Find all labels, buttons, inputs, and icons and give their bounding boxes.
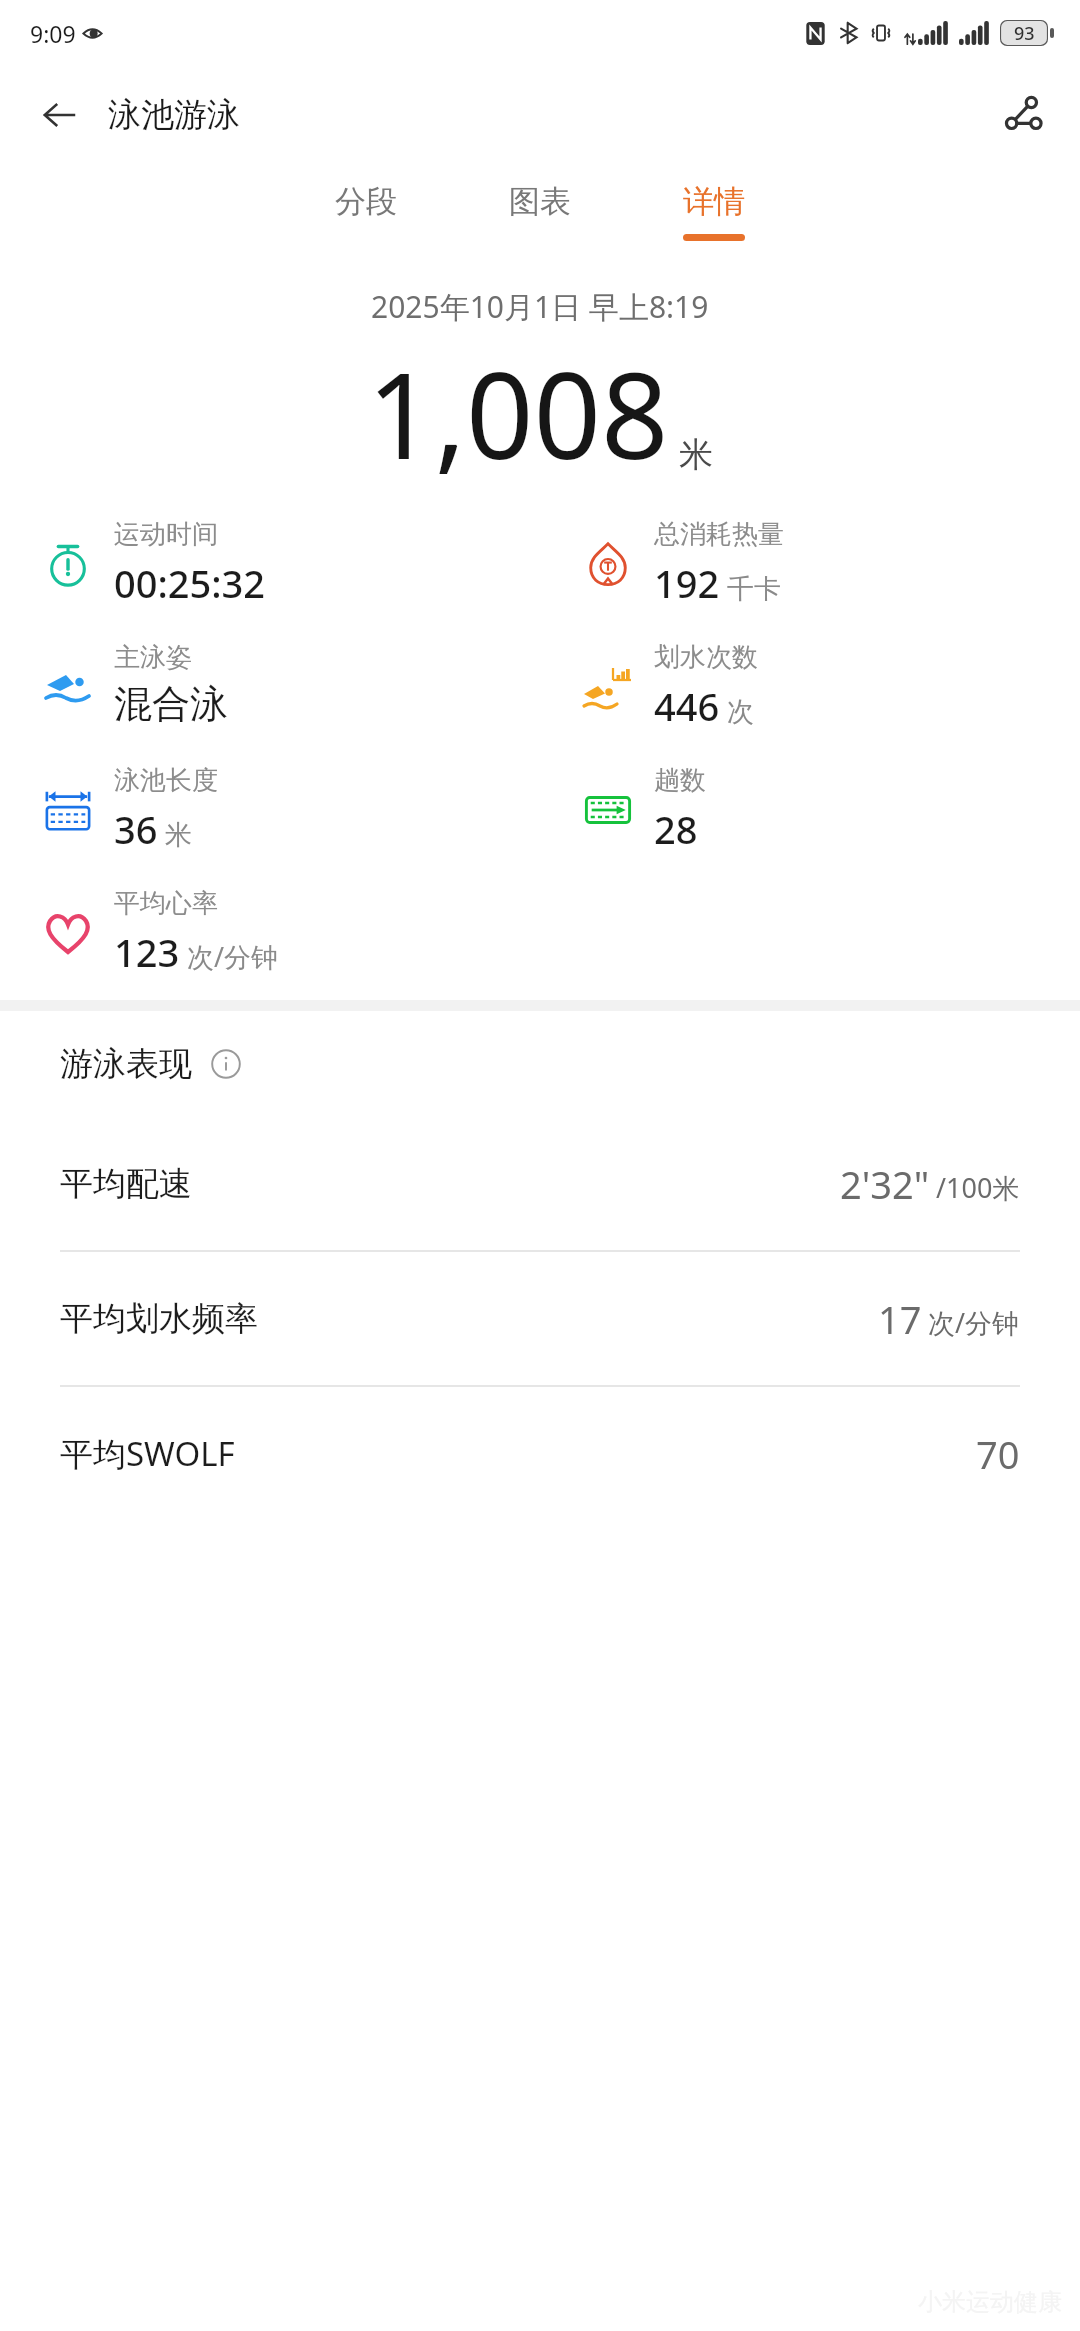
staticText: 主泳姿 [114,641,192,674]
button[interactable]: 主泳姿 [0,641,540,728]
staticText: 泳池长度 [114,764,218,797]
button[interactable]: 图表 [484,164,596,260]
staticText: 混合泳 [114,680,228,728]
staticText: 总消耗热量 [654,518,784,551]
button[interactable]: Share [992,84,1054,146]
staticText: 446 [654,680,720,732]
staticText: 192 [654,557,720,609]
staticText: 93 [1014,21,1035,46]
staticText: 次/分钟 [187,938,279,975]
staticText: 2'32" [840,1158,930,1210]
button[interactable]: Back [30,86,88,144]
staticText: 平均SWOLF [60,1431,235,1476]
staticText: 米 [679,433,713,476]
staticText: 2025年10月1日 早上8:19 [371,286,709,327]
staticText: 00:25:32 [114,557,266,609]
staticText: 趟数 [654,764,706,797]
staticText: 9:09 [30,18,76,49]
staticText: 70 [976,1428,1020,1480]
staticText: 千卡 [727,572,781,606]
staticText: 划水次数 [654,641,758,674]
button[interactable]: 分段 [310,164,422,260]
button[interactable]: 平均心率 [0,887,540,978]
staticText: 平均配速 [60,1163,192,1205]
staticText: 平均心率 [114,887,218,920]
staticText: 小米运动健康 [918,2287,1062,2317]
staticText: 28 [654,803,698,855]
button[interactable]: 趟数 [540,764,1080,855]
staticText: 详情 [683,182,745,221]
button[interactable]: 平均划水频率 [0,1252,1080,1387]
staticText: 图表 [509,182,571,221]
staticText: 游泳表现 [60,1043,192,1085]
button[interactable]: 详情 [658,164,770,260]
button[interactable]: 总消耗热量 [540,518,1080,609]
button[interactable]: 平均SWOLF [0,1387,1080,1520]
button[interactable]: Info [206,1044,246,1084]
button[interactable]: 运动时间 [0,518,540,609]
staticText: 36 [114,803,158,855]
staticText: 泳池游泳 [108,94,240,136]
staticText: 米 [165,818,192,852]
staticText: 次/分钟 [928,1304,1020,1341]
staticText: 运动时间 [114,518,218,551]
staticText: /100米 [936,1169,1020,1206]
staticText: 17 [878,1293,922,1345]
staticText: 分段 [335,182,397,221]
staticText: 次 [727,695,754,729]
button[interactable]: 平均配速 [0,1117,1080,1252]
button[interactable]: 划水次数 [540,641,1080,732]
staticText: 123 [114,926,180,978]
button[interactable]: 泳池长度 [0,764,540,855]
staticText: 1,008 [367,333,669,494]
staticText: 平均划水频率 [60,1298,258,1340]
